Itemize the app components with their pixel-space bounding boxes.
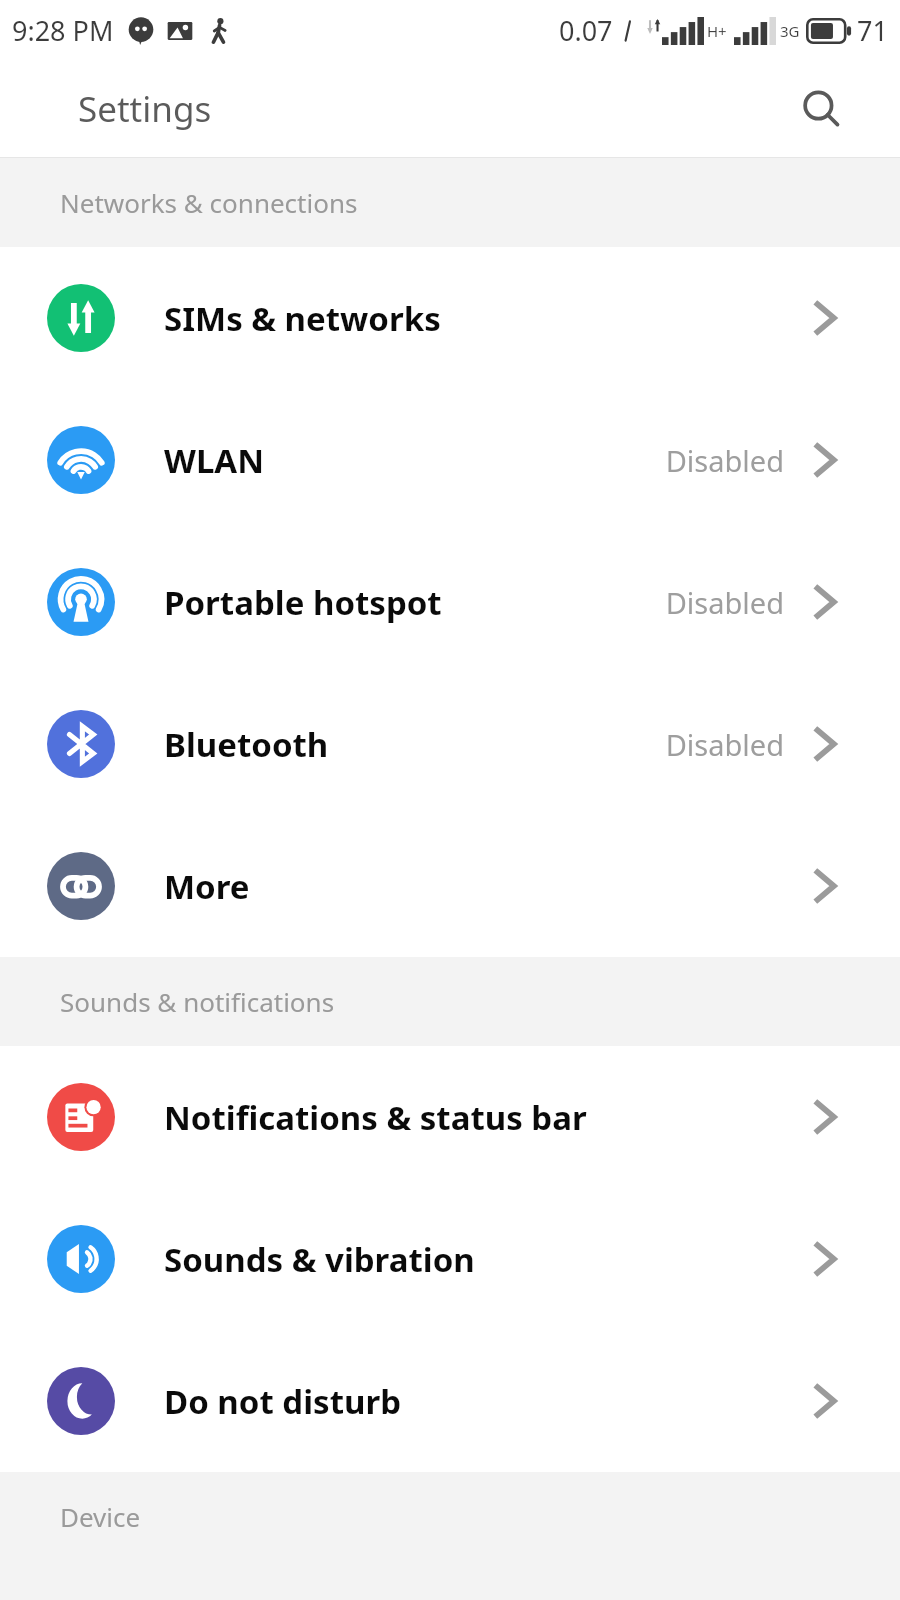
staticText: H+ xyxy=(707,21,727,41)
staticText: 9:28 PM xyxy=(12,12,114,49)
staticText: 71 xyxy=(857,12,888,49)
staticText: More xyxy=(164,864,808,909)
button[interactable]: Bluetooth xyxy=(0,673,900,815)
staticText: Sounds & notifications xyxy=(60,984,335,1019)
button[interactable]: WLAN xyxy=(0,389,900,531)
staticText: Do not disturb xyxy=(164,1379,808,1424)
button[interactable]: Search xyxy=(792,80,850,138)
staticText: Bluetooth xyxy=(164,722,665,767)
staticText: Networks & connections xyxy=(60,185,358,220)
button[interactable]: Do not disturb xyxy=(0,1330,900,1472)
staticText: Device xyxy=(60,1499,141,1534)
staticText: Disabled xyxy=(665,441,784,480)
staticText: Disabled xyxy=(665,725,784,764)
button[interactable]: Sounds & vibration xyxy=(0,1188,900,1330)
staticText: 0.07 xyxy=(559,12,613,49)
button[interactable]: Notifications & status bar xyxy=(0,1046,900,1188)
button[interactable]: Portable hotspot xyxy=(0,531,900,673)
staticText: Disabled xyxy=(665,583,784,622)
staticText: SIMs & networks xyxy=(164,296,808,341)
button[interactable]: SIMs & networks xyxy=(0,247,900,389)
staticText: WLAN xyxy=(164,438,665,483)
button[interactable]: More xyxy=(0,815,900,957)
staticText: 3G xyxy=(780,21,800,41)
staticText: Settings xyxy=(78,85,212,133)
staticText: Notifications & status bar xyxy=(164,1095,808,1140)
staticText: Sounds & vibration xyxy=(164,1237,808,1282)
staticText: Portable hotspot xyxy=(164,580,665,625)
